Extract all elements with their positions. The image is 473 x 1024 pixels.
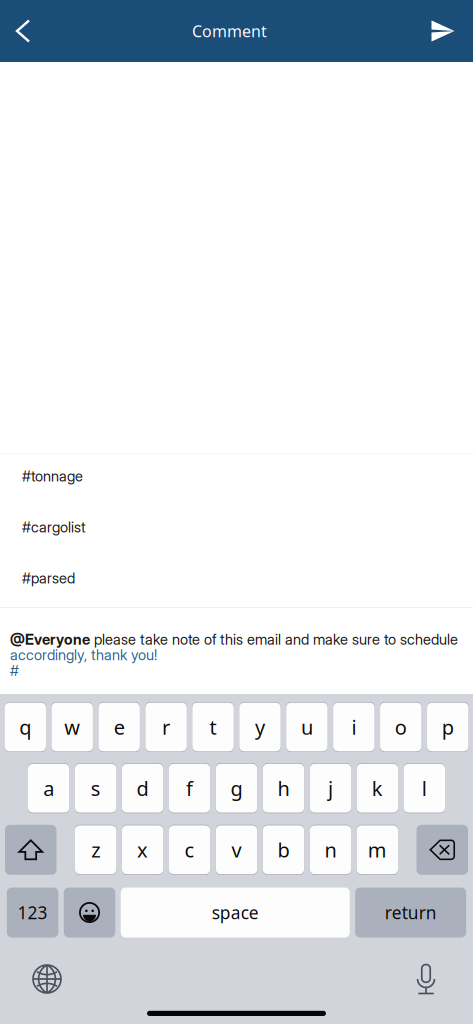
staticText: x [137,836,148,863]
button[interactable]: m [357,825,398,875]
staticText: c [185,836,195,863]
staticText: b [277,836,289,863]
button[interactable]: Emoji [64,887,115,937]
button[interactable]: q [4,702,46,752]
staticText: u [301,713,313,741]
button[interactable]: k [357,763,398,813]
button[interactable]: a [28,763,69,813]
staticText: #tonnage [22,467,83,485]
staticText: u [301,713,313,741]
staticText: n [324,836,336,863]
staticText: 123 [18,901,48,924]
staticText: j [328,775,333,802]
staticText: a [43,775,54,802]
button[interactable]: t [192,702,234,752]
staticText: r [162,713,170,741]
staticText: e [114,713,125,741]
button[interactable]: Send [413,0,473,62]
staticText: p [442,713,454,741]
staticText: s [91,775,101,802]
button[interactable]: #parsed [0,556,473,607]
button[interactable]: Switch keyboard [16,959,78,999]
staticText: x [137,836,148,863]
button[interactable]: u [286,702,328,752]
staticText: # [10,662,19,680]
button[interactable]: s [75,763,116,813]
staticText: f [186,775,193,802]
staticText: e [114,713,125,741]
staticText: y [255,713,265,741]
staticText: @Everyone please take note of this email… [10,631,458,648]
staticText: a [43,775,54,802]
staticText: m [368,836,387,863]
staticText: h [277,775,289,802]
staticText: g [230,775,242,802]
button[interactable]: Delete [416,825,468,875]
staticText: q [19,713,31,741]
button[interactable]: c [169,825,210,875]
staticText: n [324,836,336,863]
button[interactable]: o [380,702,422,752]
button[interactable]: v [216,825,257,875]
staticText: r [162,713,170,741]
staticText: b [277,836,289,863]
staticText: t [209,713,216,741]
staticText: h [277,775,289,802]
button[interactable]: Back [0,0,46,62]
staticText: y [255,713,265,741]
button[interactable]: g [216,763,257,813]
button[interactable]: w [51,702,93,752]
staticText: g [230,775,242,802]
button[interactable]: h [263,763,304,813]
staticText: q [19,713,31,741]
button[interactable]: x [122,825,163,875]
staticText: t [209,713,216,741]
staticText: p [442,713,454,741]
button[interactable]: Dictate [395,959,457,999]
button[interactable]: return [355,887,466,937]
button[interactable]: #tonnage [0,454,473,505]
button[interactable]: l [403,763,445,813]
staticText: c [185,836,195,863]
staticText: w [64,713,80,741]
staticText: o [395,713,407,741]
staticText: j [328,775,333,802]
staticText: m [368,836,387,863]
button[interactable]: 123 [7,887,58,937]
staticText: v [231,836,241,863]
button[interactable]: #cargolist [0,505,473,556]
button[interactable]: z [75,825,116,875]
staticText: z [91,836,100,863]
staticText: v [231,836,241,863]
staticText: l [422,775,427,802]
button[interactable]: d [122,763,163,813]
staticText: return [385,901,437,924]
button[interactable]: r [145,702,187,752]
button[interactable]: space [121,887,350,937]
staticText: Comment [192,20,267,42]
staticText: l [422,775,427,802]
button[interactable]: Shift [5,825,56,875]
staticText: d [137,775,149,802]
button[interactable]: j [310,763,351,813]
staticText: #cargolist [22,518,86,536]
button[interactable]: f [169,763,210,813]
button[interactable]: e [98,702,140,752]
button[interactable]: n [310,825,351,875]
staticText: space [212,901,259,924]
button[interactable]: p [427,702,468,752]
staticText: k [372,775,383,802]
staticText: s [91,775,101,802]
staticText: o [395,713,407,741]
staticText: k [372,775,383,802]
button[interactable]: y [239,702,281,752]
staticText: w [64,713,80,741]
staticText: #parsed [22,569,75,587]
staticText: z [91,836,100,863]
button[interactable]: i [333,702,375,752]
staticText: i [351,713,356,741]
button[interactable]: b [263,825,304,875]
staticText: i [351,713,356,741]
staticText: f [186,775,193,802]
staticText: d [137,775,149,802]
